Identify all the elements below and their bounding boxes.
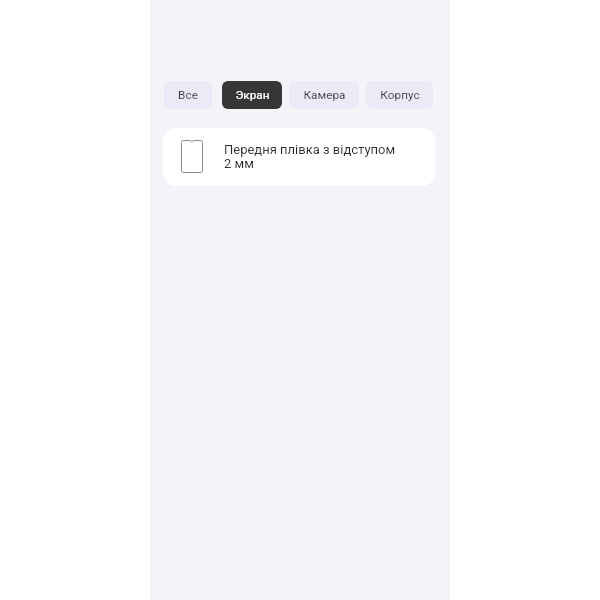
button[interactable]: Корпус: [366, 81, 433, 109]
button[interactable]: Все: [164, 81, 212, 109]
button[interactable]: Экран: [222, 81, 282, 109]
staticText: Корпус: [380, 88, 420, 102]
staticText: Экран: [235, 88, 270, 102]
staticText: Передня плівка з відступом 2 мм: [224, 142, 396, 171]
staticText: Все: [178, 88, 198, 102]
other: Передня плівка: [181, 140, 203, 173]
staticText: Камера: [303, 88, 346, 102]
button[interactable]: Передня плівка: [163, 128, 435, 186]
button[interactable]: Камера: [289, 81, 359, 109]
